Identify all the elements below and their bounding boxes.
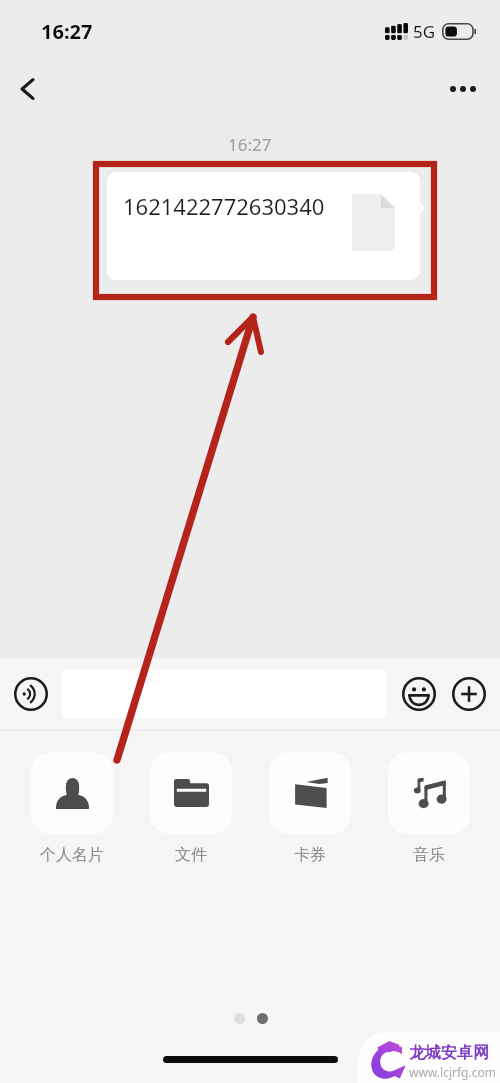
button[interactable]: 文件: [150, 752, 232, 865]
button[interactable]: 音乐: [388, 752, 470, 865]
staticText: 卡券: [294, 845, 326, 865]
button[interactable]: Back: [3, 65, 51, 113]
staticText: 文件: [175, 845, 207, 865]
button[interactable]: More options: [438, 65, 488, 113]
button[interactable]: Emoji: [395, 670, 443, 718]
button[interactable]: 个人名片: [31, 752, 113, 865]
button[interactable]: 1621422772630340: [107, 172, 420, 280]
staticText: 音乐: [413, 845, 445, 865]
staticText: 个人名片: [40, 845, 104, 865]
staticText: 16:27: [41, 18, 93, 45]
button[interactable]: 卡券: [269, 752, 351, 865]
button[interactable]: Voice input: [7, 670, 55, 718]
staticText: 1621422772630340: [123, 191, 325, 221]
staticText: 16:27: [228, 133, 272, 156]
button[interactable]: More: [445, 670, 493, 718]
staticText: 龙城安卓网: [409, 1043, 489, 1063]
button[interactable]: [62, 669, 387, 719]
staticText: www.lcjrfg.com: [409, 1064, 496, 1080]
staticText: 5G: [413, 20, 436, 43]
